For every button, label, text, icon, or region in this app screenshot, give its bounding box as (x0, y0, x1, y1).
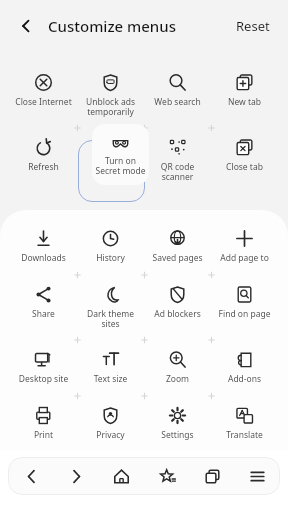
button[interactable]: Find on page (211, 284, 278, 320)
button[interactable]: Turn on Secret mode (92, 124, 149, 185)
button[interactable]: Zoom (144, 349, 211, 385)
staticText: Translate (211, 429, 278, 441)
staticText: Dark theme sites (77, 308, 144, 329)
button[interactable]: New tab (211, 72, 278, 108)
button[interactable]: Saved pages (144, 228, 211, 264)
staticText: Saved pages (144, 252, 211, 264)
button[interactable]: Refresh (10, 137, 77, 173)
button[interactable]: Close Internet (10, 72, 77, 108)
staticText: Zoom (144, 373, 211, 385)
staticText: Ad blockers (144, 308, 211, 320)
staticText: Unblock ads temporarily (77, 96, 144, 117)
staticText: Close Internet (10, 96, 77, 108)
button[interactable]: Translate (211, 405, 278, 441)
button[interactable]: Unblock ads temporarily (77, 72, 144, 117)
button[interactable]: Tabs (190, 457, 234, 495)
staticText: Add page to (211, 252, 278, 264)
button[interactable]: Add page to (211, 228, 278, 264)
staticText: Print (10, 429, 77, 441)
staticText: Downloads (10, 252, 77, 264)
button[interactable]: Bookmarks (145, 457, 189, 495)
staticText: Share (10, 308, 77, 320)
staticText: Add-ons (211, 373, 278, 385)
staticText: Find on page (211, 308, 278, 320)
staticText: Customize menus (48, 16, 176, 36)
button[interactable]: Downloads (10, 228, 77, 264)
button[interactable]: History (77, 228, 144, 264)
staticText: Settings (144, 429, 211, 441)
staticText: Web search (144, 96, 211, 108)
button[interactable]: Close tab (211, 137, 278, 173)
button[interactable]: Back (12, 12, 40, 40)
button[interactable]: Print (10, 405, 77, 441)
button[interactable]: Forward (54, 457, 98, 495)
staticText: Turn on Secret mode (92, 155, 149, 177)
staticText: Privacy (77, 429, 144, 441)
button[interactable]: Add-ons (211, 349, 278, 385)
staticText: QR code scanner (144, 161, 211, 182)
button[interactable]: Back (9, 457, 53, 495)
button[interactable]: Reset (232, 13, 274, 39)
button[interactable]: Ad blockers (144, 284, 211, 320)
button[interactable]: Share (10, 284, 77, 320)
button[interactable]: Desktop site (10, 349, 77, 385)
button[interactable]: Settings (144, 405, 211, 441)
button[interactable]: Web search (144, 72, 211, 108)
staticText: Close tab (211, 161, 278, 173)
staticText: Text size (77, 373, 144, 385)
button[interactable]: QR code scanner (144, 137, 211, 182)
button[interactable]: Home (99, 457, 143, 495)
button[interactable]: Dark theme sites (77, 284, 144, 329)
button[interactable]: Text size (77, 349, 144, 385)
button[interactable]: Menu (235, 457, 279, 495)
staticText: Reset (236, 17, 270, 35)
staticText: Refresh (10, 161, 77, 173)
staticText: History (77, 252, 144, 264)
staticText: New tab (211, 96, 278, 108)
staticText: Desktop site (10, 373, 77, 385)
button[interactable]: Privacy (77, 405, 144, 441)
